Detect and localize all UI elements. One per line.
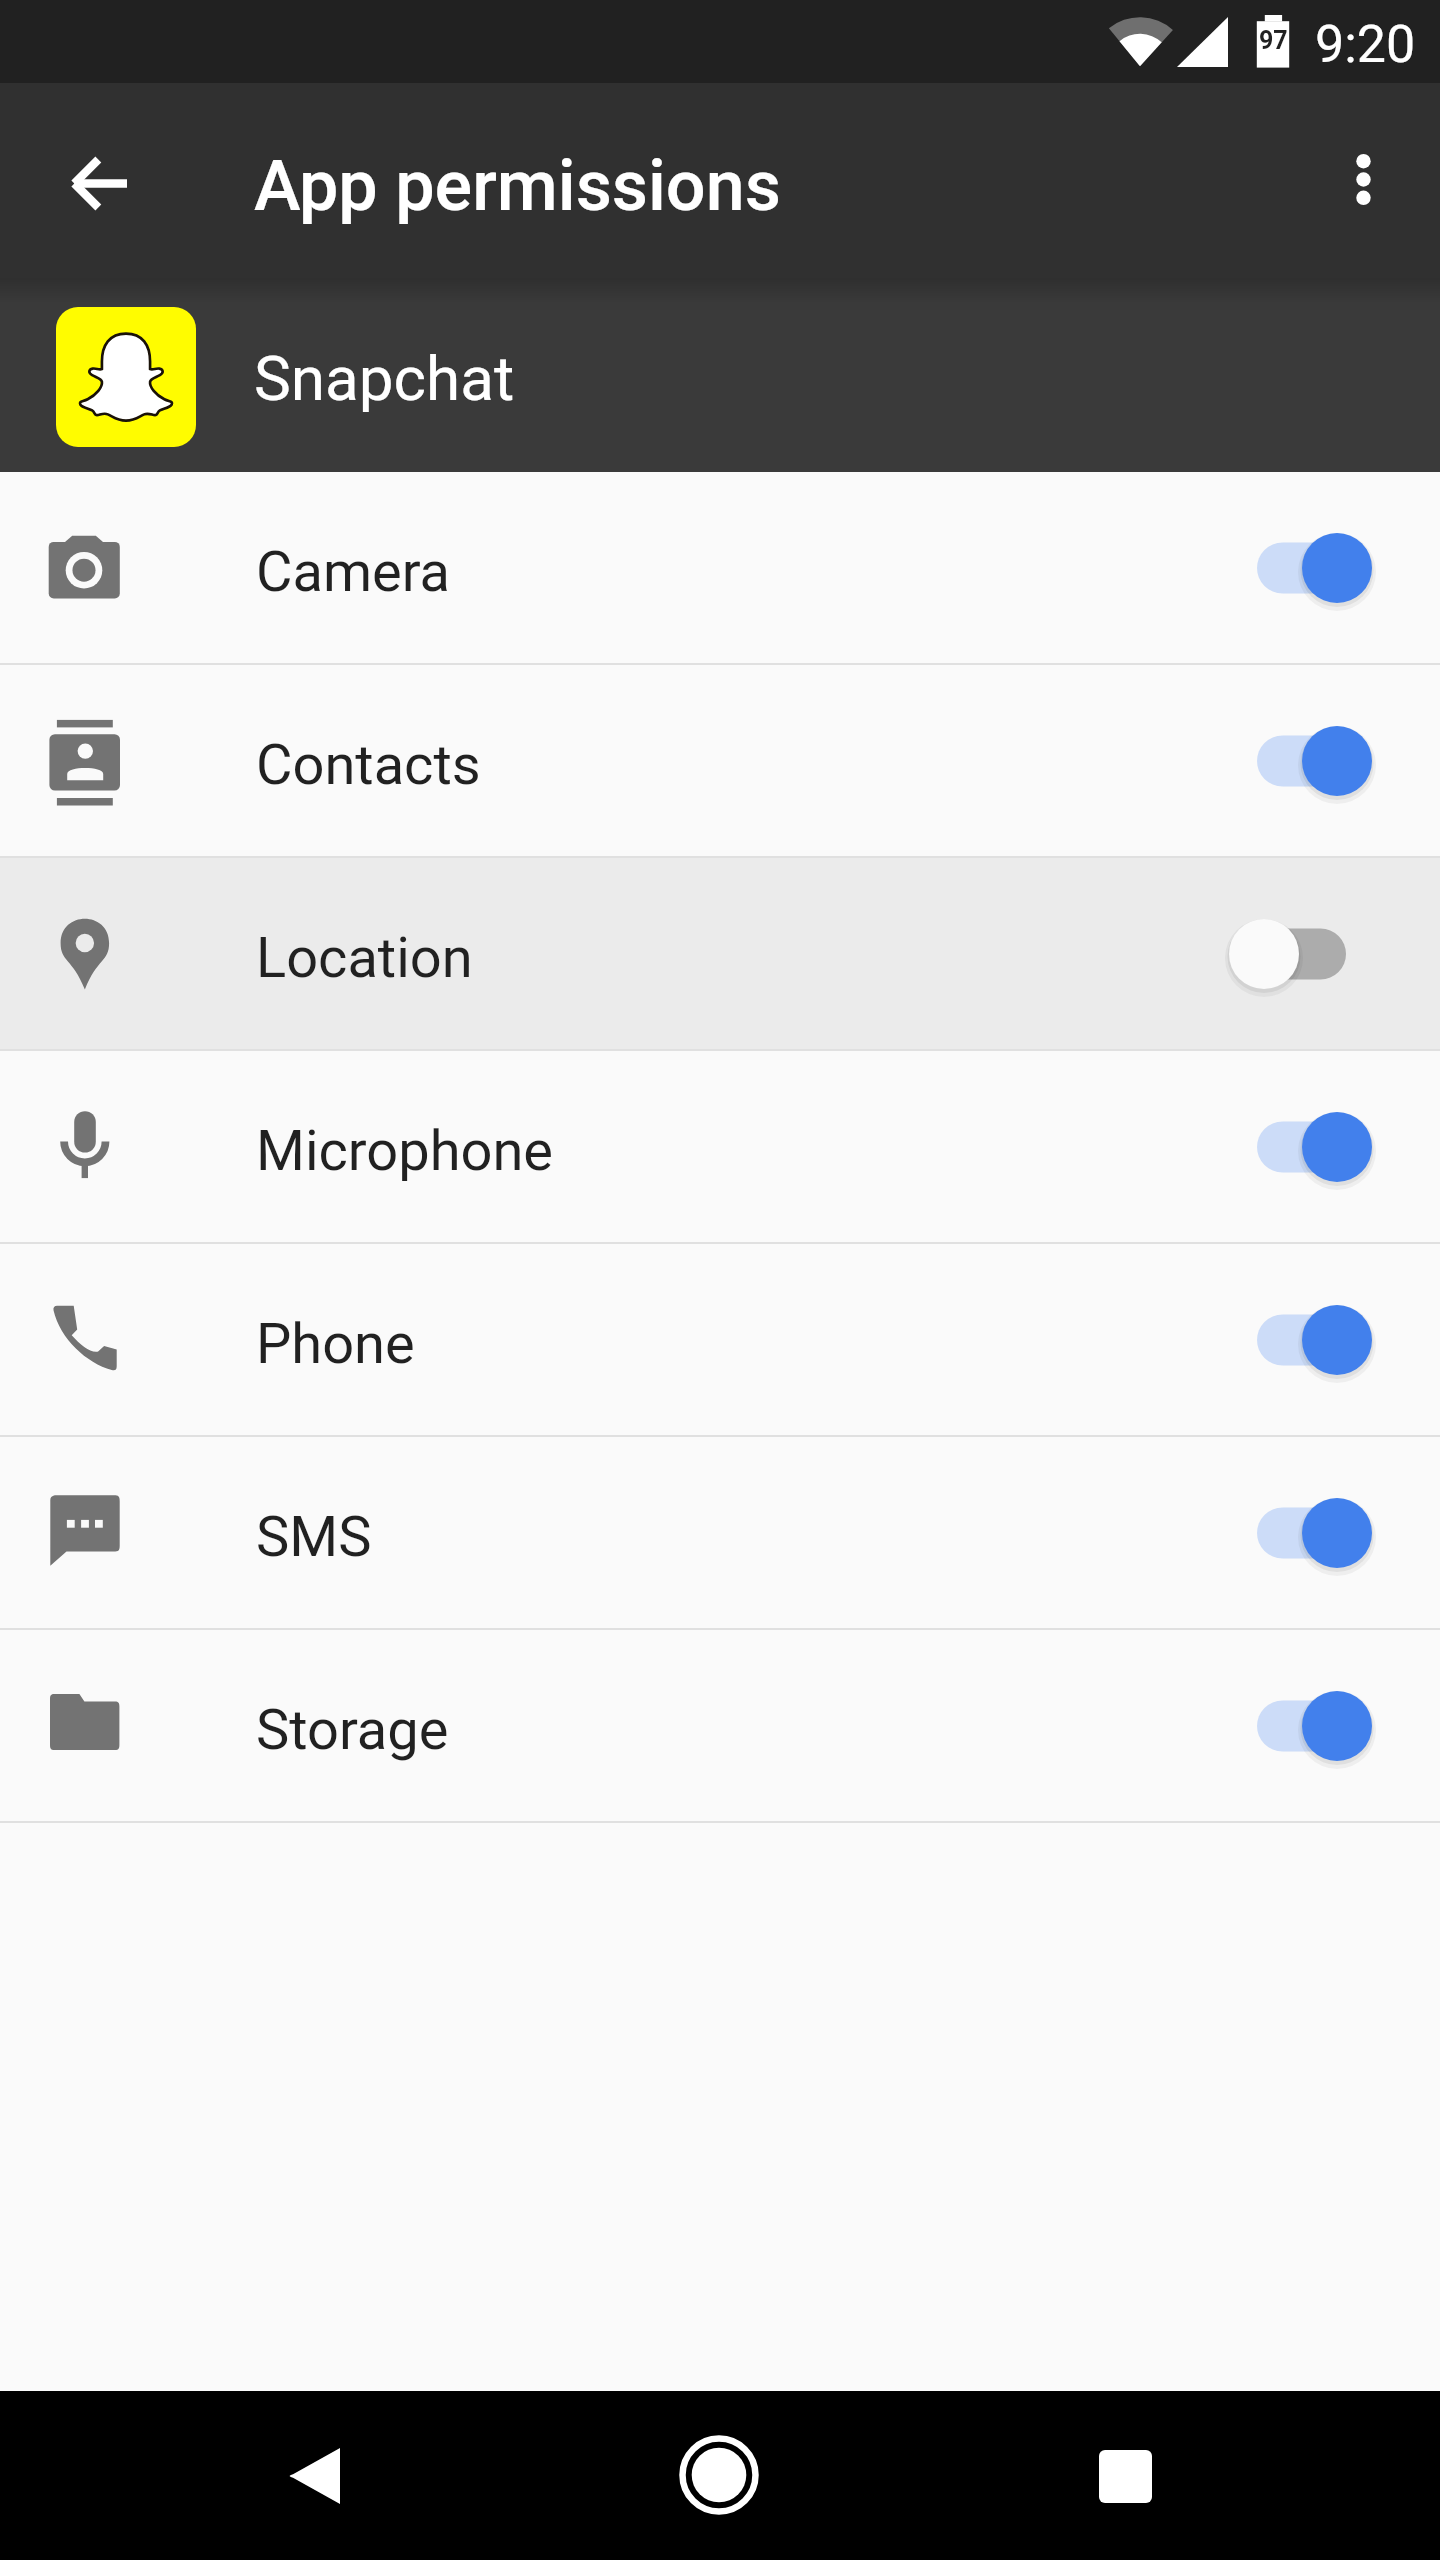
staticText: 97 xyxy=(1259,26,1288,55)
staticText: Snapchat xyxy=(254,342,515,415)
staticText: Camera xyxy=(256,539,451,605)
button[interactable]: Back xyxy=(200,2391,430,2560)
staticText: Location xyxy=(256,925,473,991)
staticText: Phone xyxy=(256,1311,415,1377)
button[interactable]: More options xyxy=(1300,111,1440,251)
button[interactable]: Phone xyxy=(0,1244,1440,1435)
button[interactable]: SMS xyxy=(0,1437,1440,1628)
staticText: Microphone xyxy=(256,1118,554,1184)
staticText: Storage xyxy=(256,1697,449,1763)
button[interactable]: Storage xyxy=(0,1630,1440,1821)
button[interactable]: Contacts xyxy=(0,665,1440,856)
staticText: App permissions xyxy=(254,145,781,227)
button[interactable]: Home xyxy=(609,2391,829,2560)
staticText: Contacts xyxy=(256,732,481,798)
button[interactable]: Microphone xyxy=(0,1051,1440,1242)
button[interactable]: Camera xyxy=(0,472,1440,663)
staticText: SMS xyxy=(256,1504,372,1570)
staticText: 9:20 xyxy=(1315,14,1416,75)
button[interactable]: Location xyxy=(0,858,1440,1049)
button[interactable]: Back xyxy=(28,111,168,251)
button[interactable]: Recent apps xyxy=(1010,2391,1240,2560)
button[interactable]: Snapchat xyxy=(0,278,1440,472)
